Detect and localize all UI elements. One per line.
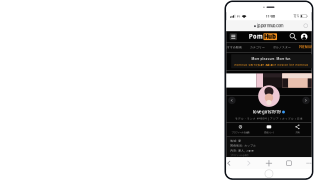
button[interactable]: Menu: [230, 33, 237, 40]
staticText: au: [236, 14, 240, 18]
button[interactable]: More: [303, 158, 315, 169]
button[interactable]: プロフィールを編集: [226, 124, 255, 134]
button[interactable]: More pleasure. More fun.: [226, 54, 312, 68]
staticText: jp.pornhub.com: [257, 23, 284, 28]
button[interactable]: PREMIUM: [299, 45, 314, 49]
staticText: 12%: [293, 14, 299, 18]
staticText: Pornhub Sex Toys are available now on th…: [234, 63, 308, 66]
button[interactable]: カテゴリー: [250, 45, 265, 49]
staticText: カテゴリー: [250, 45, 265, 49]
staticText: モデル・ランク #4804 | アジア / カップル / 日本: [235, 117, 303, 120]
staticText: More pleasure. More fun.: [251, 57, 291, 61]
staticText: lovegirls1919: [253, 109, 281, 115]
button[interactable]: Next: [302, 97, 310, 104]
button[interactable]: おすすめ動画: [224, 45, 242, 49]
staticText: プロフィールを編集: [231, 131, 249, 134]
button[interactable]: New tab: [263, 158, 275, 169]
button[interactable]: Forward: [243, 158, 255, 169]
staticText: 地域: 愛: [230, 139, 241, 142]
staticText: 関係状況: カップル: [230, 144, 256, 147]
staticText: 内容: 愛人, Japan: [230, 149, 254, 152]
button[interactable]: Reload: [302, 22, 309, 29]
staticText: PREMIUM: [299, 45, 314, 49]
staticText: Porn: [249, 33, 263, 40]
staticText: Hub: [264, 33, 276, 40]
button[interactable]: Back: [223, 158, 235, 169]
staticText: プロフィールを表示: [230, 154, 248, 157]
button[interactable]: Search: [289, 33, 297, 41]
button[interactable]: Tabs: [283, 158, 295, 169]
staticText: 11:08: [266, 14, 275, 19]
button[interactable]: Account: [300, 33, 308, 41]
staticText: ポルノスター: [273, 45, 291, 49]
button[interactable]: 受信トレイ: [255, 124, 283, 134]
button[interactable]: Pornhub home: [249, 33, 277, 40]
staticText: 共有: [295, 131, 299, 134]
staticText: 受信トレイ: [264, 131, 274, 134]
button[interactable]: ポルノスター: [273, 45, 291, 49]
staticText: おすすめ動画: [224, 45, 242, 49]
button[interactable]: 共有: [283, 124, 312, 134]
button[interactable]: Previous: [228, 97, 236, 104]
